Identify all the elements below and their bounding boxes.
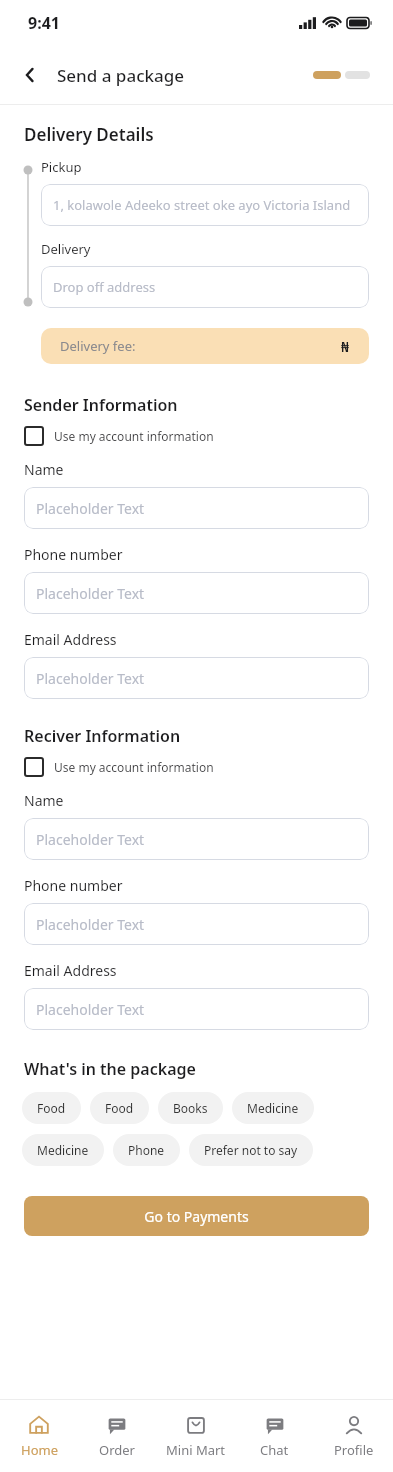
staticText: Placeholder Text: [36, 1000, 145, 1019]
staticText: Books: [173, 1100, 208, 1116]
staticText: Medicine: [37, 1142, 89, 1158]
button[interactable]: Placeholder Text: [24, 988, 369, 1030]
staticText: Phone number: [24, 545, 123, 564]
button[interactable]: Placeholder Text: [24, 818, 369, 860]
staticText: Use my account information: [54, 428, 214, 444]
staticText: Pickup: [41, 158, 82, 176]
staticText: Delivery fee:: [60, 337, 136, 355]
staticText: Sender Information: [24, 394, 178, 416]
staticText: Email Address: [24, 961, 117, 980]
staticText: Chat: [260, 1441, 289, 1459]
staticText: Use my account information: [54, 759, 214, 775]
staticText: Mini Mart: [166, 1441, 226, 1459]
staticText: Name: [24, 791, 64, 810]
button[interactable]: Go to Payments: [24, 1196, 369, 1236]
button[interactable]: Books: [158, 1092, 223, 1124]
staticText: Profile: [334, 1441, 374, 1459]
staticText: Medicine: [247, 1100, 299, 1116]
staticText: Placeholder Text: [36, 915, 145, 934]
staticText: Go to Payments: [144, 1207, 249, 1226]
staticText: Food: [105, 1100, 134, 1116]
staticText: Send a package: [57, 64, 185, 87]
staticText: 9:41: [28, 12, 60, 34]
button[interactable]: Chat: [235, 1400, 314, 1472]
staticText: Placeholder Text: [36, 584, 145, 603]
staticText: Food: [37, 1100, 66, 1116]
button[interactable]: Food: [90, 1092, 149, 1124]
staticText: Email Address: [24, 630, 117, 649]
button[interactable]: Phone: [113, 1134, 180, 1166]
button[interactable]: Order: [78, 1400, 156, 1472]
button[interactable]: Medicine: [22, 1134, 104, 1166]
button[interactable]: 1, kolawole Adeeko street oke ayo Victor…: [41, 184, 369, 226]
button[interactable]: Use my account information: [24, 757, 214, 777]
staticText: Phone number: [24, 876, 123, 895]
staticText: Prefer not to say: [204, 1142, 298, 1158]
staticText: Placeholder Text: [36, 669, 145, 688]
button[interactable]: Profile: [314, 1400, 393, 1472]
staticText: Delivery: [41, 240, 91, 258]
button[interactable]: Food: [22, 1092, 81, 1124]
button[interactable]: Mini Mart: [156, 1400, 235, 1472]
button[interactable]: Delivery fee:: [41, 328, 369, 364]
staticText: ₦: [341, 337, 350, 356]
staticText: What's in the package: [24, 1058, 196, 1080]
staticText: Reciver Information: [24, 725, 181, 747]
button[interactable]: Placeholder Text: [24, 657, 369, 699]
staticText: 1, kolawole Adeeko street oke ayo Victor…: [53, 196, 351, 214]
button[interactable]: Placeholder Text: [24, 487, 369, 529]
button[interactable]: Back: [12, 57, 48, 93]
button[interactable]: Home: [0, 1400, 78, 1472]
staticText: Name: [24, 460, 64, 479]
staticText: Delivery Details: [24, 123, 154, 146]
button[interactable]: Use my account information: [24, 426, 214, 446]
staticText: Phone: [128, 1142, 165, 1158]
staticText: Drop off address: [53, 278, 156, 296]
button[interactable]: Drop off address: [41, 266, 369, 308]
staticText: Home: [21, 1441, 58, 1459]
button[interactable]: Placeholder Text: [24, 572, 369, 614]
button[interactable]: Prefer not to say: [189, 1134, 313, 1166]
button[interactable]: Medicine: [232, 1092, 314, 1124]
staticText: Order: [99, 1441, 135, 1459]
button[interactable]: Placeholder Text: [24, 903, 369, 945]
staticText: Placeholder Text: [36, 499, 145, 518]
staticText: Placeholder Text: [36, 830, 145, 849]
